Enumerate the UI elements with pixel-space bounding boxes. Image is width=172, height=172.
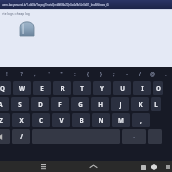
button[interactable]: /	[12, 129, 30, 144]
staticText: !	[6, 71, 8, 78]
button[interactable]: B	[72, 113, 90, 127]
staticText: "	[60, 71, 63, 78]
button[interactable]: A	[0, 97, 9, 111]
staticText: D	[38, 100, 43, 108]
button[interactable]: .	[159, 69, 172, 80]
staticText: N	[98, 116, 104, 124]
staticText: G	[78, 100, 83, 108]
button[interactable]: Q	[0, 81, 11, 95]
button[interactable]: E	[33, 81, 51, 95]
button[interactable]: C	[32, 113, 50, 127]
button[interactable]: ,	[28, 69, 42, 80]
staticText: Q	[0, 84, 5, 92]
staticText: T	[80, 84, 84, 92]
staticText: /	[20, 132, 23, 141]
button[interactable]: M	[112, 113, 130, 127]
staticText: '	[48, 71, 50, 78]
staticText: @	[150, 71, 155, 78]
button[interactable]: N	[92, 113, 110, 127]
staticText: }	[100, 71, 102, 78]
staticText: Y	[100, 84, 104, 92]
button[interactable]: D	[31, 97, 49, 111]
button[interactable]: aero.bw.yanueol.it/1.cb0lb/7wyxg7/nzivQr…	[0, 0, 172, 9]
button[interactable]: !	[0, 69, 14, 80]
staticText: aero.bw.yanueol.it/1.cb0lb/7wyxg7/nzivQr…	[2, 3, 109, 7]
staticText: /	[139, 71, 141, 78]
button[interactable]: '	[42, 69, 55, 80]
staticText: C	[39, 116, 43, 124]
button[interactable]: "	[55, 69, 68, 80]
button[interactable]: Symbols	[0, 129, 10, 144]
button[interactable]: }	[94, 69, 107, 80]
button[interactable]: Back	[87, 161, 100, 172]
button[interactable]: ;	[107, 69, 120, 80]
button[interactable]: X	[12, 113, 30, 127]
other: Image placeholder	[20, 19, 34, 36]
staticText: R	[60, 84, 65, 92]
staticText: B	[79, 116, 84, 124]
button[interactable]: L	[151, 97, 161, 111]
button[interactable]: Security	[148, 161, 159, 172]
button[interactable]: W	[13, 81, 31, 95]
button[interactable]: {	[81, 69, 94, 80]
staticText: W	[19, 84, 25, 92]
button[interactable]: F	[51, 97, 69, 111]
button[interactable]: R	[53, 81, 71, 95]
staticText: :	[74, 71, 76, 78]
button[interactable]: -	[120, 69, 133, 80]
button[interactable]: O	[153, 81, 163, 95]
staticText: F	[58, 100, 62, 108]
button[interactable]: ,	[132, 113, 150, 127]
staticText: U	[120, 84, 125, 92]
staticText: O	[156, 84, 161, 92]
staticText: S	[18, 100, 22, 108]
staticText: H	[98, 100, 103, 108]
staticText: -	[126, 71, 128, 78]
staticText: A	[0, 100, 3, 108]
button[interactable]: ?	[14, 69, 28, 80]
staticText: X	[19, 116, 24, 124]
staticText: ·	[133, 133, 135, 141]
staticText: Z	[0, 116, 3, 124]
button[interactable]: K	[131, 97, 149, 111]
staticText: ,	[140, 116, 142, 124]
button[interactable]: /	[133, 69, 146, 80]
staticText: E	[40, 84, 44, 92]
staticText: I	[141, 84, 144, 92]
button[interactable]: I	[133, 81, 151, 95]
staticText: M	[118, 116, 124, 124]
button[interactable]: H	[91, 97, 109, 111]
staticText: ,	[34, 71, 36, 78]
staticText: .	[165, 71, 167, 78]
button[interactable]: T	[73, 81, 91, 95]
staticText: ;	[113, 71, 115, 78]
button[interactable]: J	[111, 97, 129, 111]
button[interactable]: G	[71, 97, 89, 111]
button[interactable]: Keyboard switch	[138, 162, 148, 172]
button[interactable]: S	[11, 97, 29, 111]
staticText: {	[87, 71, 89, 78]
button[interactable]: :	[68, 69, 81, 80]
button[interactable]: Z	[0, 113, 10, 127]
staticText: V	[59, 116, 64, 124]
staticText: ?	[20, 71, 23, 78]
staticText: J	[119, 100, 122, 108]
button[interactable]: U	[113, 81, 131, 95]
button[interactable]: @	[146, 69, 159, 80]
button[interactable]: Menu	[163, 162, 172, 171]
button[interactable]: Recent apps	[38, 161, 49, 172]
staticText: L	[154, 100, 158, 108]
button[interactable]: Y	[93, 81, 111, 95]
button[interactable]: Enter	[122, 129, 146, 144]
staticText: K	[138, 100, 143, 108]
staticText: rte logs :cheap log	[2, 12, 30, 16]
button[interactable]: V	[52, 113, 70, 127]
